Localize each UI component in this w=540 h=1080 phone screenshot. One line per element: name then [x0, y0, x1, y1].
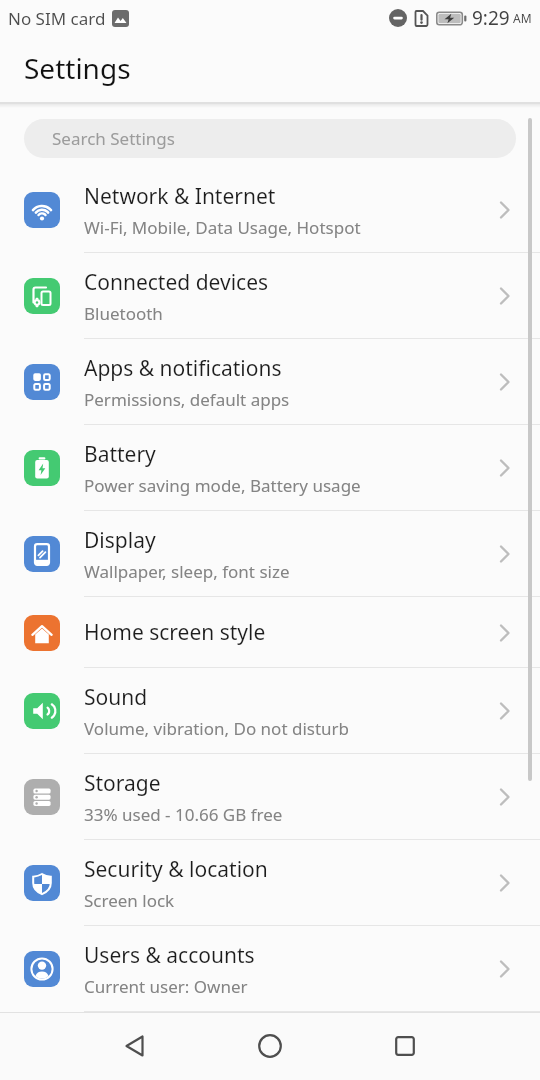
staticText: Network & Internet [84, 182, 276, 211]
staticText: Bluetooth [84, 302, 163, 325]
staticText: Sound [84, 683, 148, 712]
staticText: Home screen style [84, 618, 266, 647]
button[interactable]: Sound [0, 668, 540, 754]
staticText: Settings [24, 49, 131, 87]
staticText: Volume, vibration, Do not disturb [84, 717, 350, 740]
staticText: 9:29 [472, 5, 510, 31]
staticText: No SIM card [8, 7, 106, 30]
button[interactable]: Connected devices [0, 253, 540, 339]
staticText: Current user: Owner [84, 975, 248, 998]
button[interactable]: Home screen style [0, 597, 540, 668]
button[interactable]: Storage [0, 754, 540, 840]
staticText: Security & location [84, 855, 268, 884]
button[interactable]: Security & location [0, 840, 540, 926]
staticText: Screen lock [84, 889, 175, 912]
staticText: 33% used - 10.66 GB free [84, 803, 283, 826]
button[interactable]: Network & Internet [0, 167, 540, 253]
button[interactable] [377, 1018, 433, 1074]
staticText: Storage [84, 769, 161, 798]
staticText: Wallpaper, sleep, font size [84, 560, 290, 583]
button[interactable]: Users & accounts [0, 926, 540, 1012]
staticText: Wi-Fi, Mobile, Data Usage, Hotspot [84, 216, 361, 239]
staticText: AM [513, 10, 532, 26]
button[interactable]: Display [0, 511, 540, 597]
staticText: Display [84, 526, 156, 555]
button[interactable] [242, 1018, 298, 1074]
staticText: Apps & notifications [84, 354, 282, 383]
button[interactable]: Battery [0, 425, 540, 511]
staticText: Permissions, default apps [84, 388, 290, 411]
button[interactable] [107, 1018, 163, 1074]
button[interactable]: Apps & notifications [0, 339, 540, 425]
staticText: Search Settings [52, 127, 175, 150]
button[interactable]: Search Settings [24, 119, 516, 158]
staticText: Power saving mode, Battery usage [84, 474, 361, 497]
staticText: Connected devices [84, 268, 269, 297]
staticText: Users & accounts [84, 941, 255, 970]
staticText: Battery [84, 440, 156, 469]
